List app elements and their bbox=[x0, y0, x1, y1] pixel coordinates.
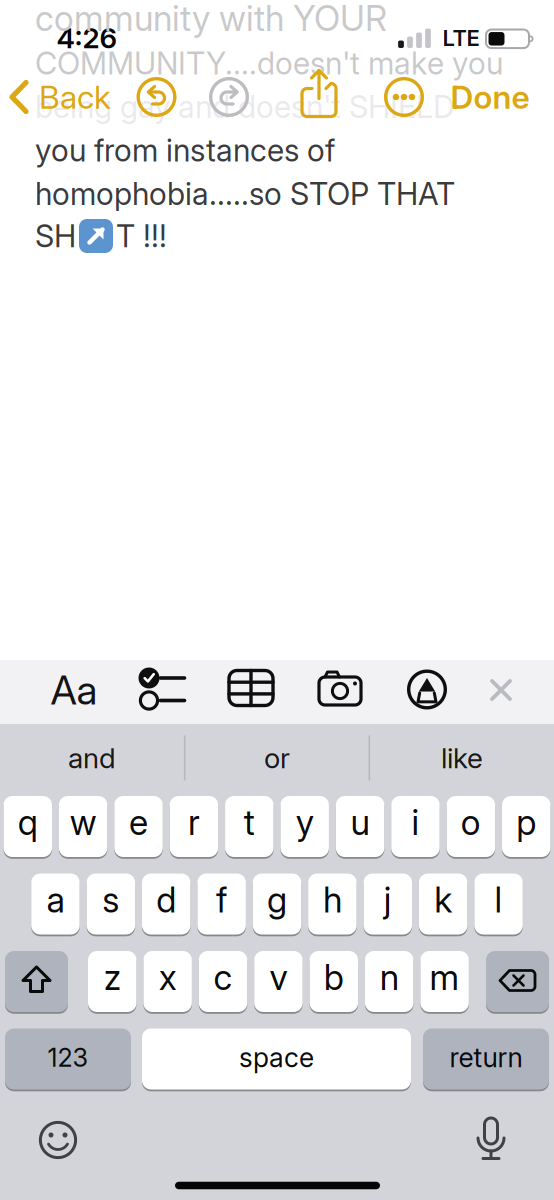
staticText: and bbox=[68, 741, 116, 775]
staticText: community with YOUR bbox=[35, 0, 387, 39]
staticText: g bbox=[267, 879, 287, 921]
staticText: z bbox=[104, 956, 121, 998]
button[interactable]: Checklist bbox=[139, 666, 187, 712]
button[interactable]: Delete bbox=[486, 950, 549, 1013]
button[interactable]: r bbox=[170, 795, 218, 858]
button[interactable]: 123 bbox=[5, 1027, 131, 1090]
staticText: homophobia.....so STOP THAT bbox=[35, 175, 455, 212]
button[interactable]: t bbox=[225, 795, 274, 858]
button[interactable]: Share bbox=[299, 67, 339, 119]
button[interactable]: or bbox=[187, 728, 367, 788]
staticText: or bbox=[264, 741, 290, 775]
staticText: u bbox=[351, 801, 370, 843]
button[interactable]: p bbox=[502, 795, 550, 858]
button[interactable]: h bbox=[308, 872, 357, 935]
staticText: T !!! bbox=[116, 217, 167, 254]
button[interactable]: f bbox=[197, 872, 246, 935]
staticText: 4:26 bbox=[56, 21, 117, 55]
button[interactable]: j bbox=[363, 872, 412, 935]
staticText: return bbox=[449, 1041, 522, 1074]
button[interactable]: Redo bbox=[207, 75, 251, 119]
staticText: Back bbox=[39, 78, 111, 116]
staticText: d bbox=[156, 879, 176, 921]
staticText: e bbox=[129, 801, 148, 843]
button[interactable]: g bbox=[253, 872, 301, 935]
button[interactable]: Camera bbox=[317, 668, 365, 706]
button[interactable]: Shift bbox=[5, 950, 68, 1013]
staticText: s bbox=[102, 879, 119, 921]
button[interactable]: q bbox=[3, 795, 52, 858]
staticText: c bbox=[213, 956, 232, 998]
button[interactable]: m bbox=[420, 950, 469, 1013]
staticText: m bbox=[430, 956, 460, 998]
staticText: y bbox=[296, 801, 314, 843]
staticText: LTE bbox=[442, 25, 479, 51]
staticText: COMMUNITY....doesn't make you bbox=[35, 45, 503, 82]
button[interactable]: w bbox=[59, 795, 107, 858]
button[interactable]: k bbox=[419, 872, 467, 935]
staticText: 123 bbox=[47, 1042, 88, 1073]
button[interactable]: o bbox=[447, 795, 495, 858]
button[interactable]: Table bbox=[227, 668, 275, 708]
button[interactable]: i bbox=[391, 795, 440, 858]
staticText: f bbox=[216, 879, 227, 921]
button[interactable]: Dictate bbox=[469, 1116, 513, 1162]
staticText: k bbox=[434, 879, 452, 921]
button[interactable]: Done bbox=[450, 78, 529, 116]
button[interactable]: More bbox=[382, 75, 426, 119]
button[interactable]: s bbox=[87, 872, 135, 935]
button[interactable]: v bbox=[254, 950, 303, 1013]
button[interactable]: Undo bbox=[134, 75, 178, 119]
staticText: j bbox=[384, 879, 392, 921]
staticText: b bbox=[324, 956, 344, 998]
button[interactable]: Dismiss keyboard bbox=[481, 670, 521, 710]
button[interactable]: c bbox=[199, 950, 247, 1013]
staticText: p bbox=[516, 801, 536, 843]
staticText: a bbox=[46, 879, 64, 921]
button[interactable]: u bbox=[336, 795, 384, 858]
staticText: n bbox=[380, 956, 399, 998]
staticText: Aa bbox=[50, 666, 97, 714]
staticText: being gay and doesn't SHIELD bbox=[35, 88, 455, 125]
button[interactable]: return bbox=[423, 1027, 549, 1090]
staticText: o bbox=[461, 801, 481, 843]
button[interactable]: space bbox=[142, 1027, 411, 1090]
staticText: like bbox=[441, 741, 483, 775]
button[interactable]: n bbox=[365, 950, 413, 1013]
staticText: r bbox=[188, 801, 200, 843]
button[interactable]: l bbox=[474, 872, 523, 935]
button[interactable]: Format bbox=[50, 666, 97, 714]
staticText: i bbox=[411, 801, 419, 843]
staticText: you from instances of bbox=[35, 132, 335, 169]
button[interactable]: b bbox=[310, 950, 358, 1013]
staticText: w bbox=[70, 801, 97, 843]
button[interactable]: Emoji bbox=[36, 1118, 80, 1162]
button[interactable]: Markup bbox=[403, 665, 451, 713]
button[interactable]: z bbox=[88, 950, 136, 1013]
button[interactable]: y bbox=[280, 795, 329, 858]
staticText: l bbox=[495, 879, 503, 921]
button[interactable]: x bbox=[143, 950, 192, 1013]
staticText: x bbox=[159, 956, 177, 998]
button[interactable]: a bbox=[31, 872, 80, 935]
staticText: SH bbox=[35, 217, 76, 254]
button[interactable]: and bbox=[2, 728, 182, 788]
staticText: space bbox=[239, 1041, 314, 1074]
button[interactable]: d bbox=[142, 872, 190, 935]
staticText: Done bbox=[450, 78, 529, 116]
button[interactable]: Back bbox=[9, 75, 111, 119]
staticText: q bbox=[18, 801, 38, 843]
staticText: v bbox=[269, 956, 287, 998]
staticText: h bbox=[323, 879, 342, 921]
button[interactable]: like bbox=[372, 728, 552, 788]
button[interactable]: e bbox=[114, 795, 163, 858]
staticText: t bbox=[244, 801, 255, 843]
